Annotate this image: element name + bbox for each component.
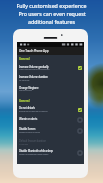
staticText: 2 minutes [19,142,28,145]
button[interactable]: Increase Volume gradually [78,66,82,70]
staticText: Increase Volume duration [19,75,48,79]
button[interactable] [17,115,84,125]
staticText: Increase Volume gradually [19,65,49,69]
button[interactable]: Do not disturb [78,108,82,112]
button[interactable]: One Touch Phone App [17,47,84,55]
staticText: additional features [28,18,75,25]
button[interactable]: Disable Bluetooth while asleep [78,151,82,155]
staticText: One Touch Phone App [19,49,49,53]
button[interactable] [17,84,84,95]
staticText: Default Sound [19,88,32,91]
staticText: Enable do not disturb by default [19,109,48,112]
staticText: Pro users can even request [18,10,86,17]
button[interactable]: Disable Screen [78,129,82,133]
button[interactable] [17,73,84,84]
staticText: Disable screen on alerts [19,130,40,133]
button[interactable]: Vibrate on alerts [78,118,82,122]
staticText: Vibrate on alerts [19,117,38,121]
button[interactable] [17,137,84,147]
staticText: General [19,57,30,61]
button[interactable] [17,148,84,158]
staticText: Alarm volume will go off gradually [19,67,50,70]
button[interactable] [17,126,84,138]
staticText: General [19,99,30,103]
staticText: 30 Seconds [19,78,30,81]
staticText: Default Snooze duration [19,139,46,143]
staticText: Do not disturb [19,106,36,110]
staticText: Change Ringtone [19,86,39,90]
button[interactable] [17,63,84,73]
staticText: Switch on bluetooth while asleep [19,152,49,155]
staticText: Fully customised experience [16,2,87,9]
staticText: Disable Bluetooth while asleep [19,149,54,153]
button[interactable] [17,105,84,115]
staticText: Disable Screen [19,127,36,131]
